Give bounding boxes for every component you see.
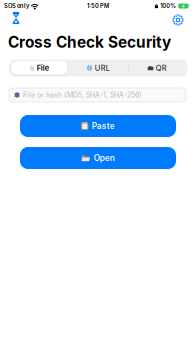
button[interactable]: Recent scans <box>8 10 24 26</box>
button[interactable]: QR <box>128 60 187 76</box>
button[interactable]: File <box>10 60 69 76</box>
button[interactable]: URL <box>69 60 128 76</box>
button[interactable]: Settings <box>170 12 186 28</box>
staticText: File or hash (MD5, SHA-1, SHA-256) <box>23 91 142 99</box>
staticText: Paste <box>92 121 115 131</box>
button[interactable]: Paste <box>20 115 176 137</box>
staticText: Cross Check Security <box>8 33 171 52</box>
staticText: Open <box>94 153 115 163</box>
staticText: 1:50 PM <box>87 2 109 9</box>
button[interactable]: Open <box>20 147 176 169</box>
staticText: QR <box>156 63 167 72</box>
staticText: File <box>37 63 49 72</box>
staticText: 100% <box>160 2 176 9</box>
staticText: URL <box>95 63 110 72</box>
staticText: SOS only <box>4 2 29 9</box>
